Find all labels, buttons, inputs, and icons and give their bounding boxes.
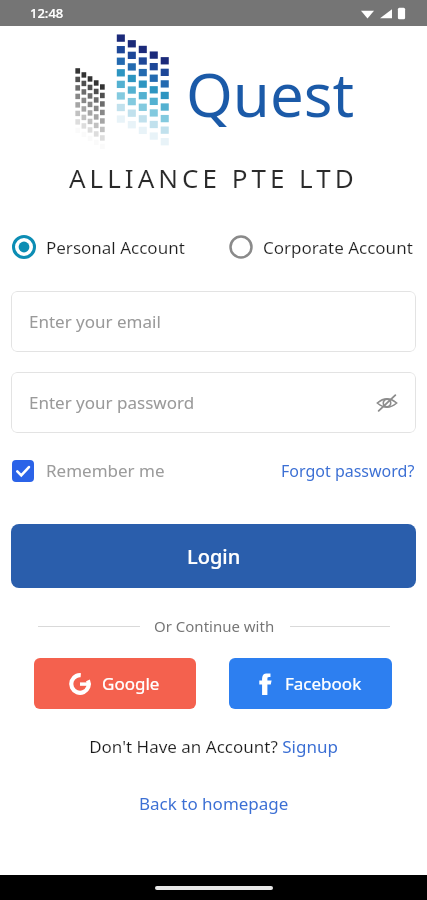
button[interactable]: Google [34,658,196,709]
button[interactable]: Corporate Account [229,231,413,263]
staticText: Forgot password? [281,460,415,482]
staticText: Back to homepage [139,792,289,815]
staticText: Don't Have an Account? Signup [89,735,338,758]
button[interactable]: Enter your password [11,372,416,433]
staticText: Quest [186,53,355,135]
button[interactable]: Forgot password? [281,460,415,482]
button[interactable]: Back to homepage [139,792,289,815]
staticText: Enter your email [29,310,161,333]
button[interactable]: Don't Have an Account? Signup [89,735,338,758]
button[interactable]: Remember me [12,459,165,482]
staticText: Corporate Account [263,236,413,259]
staticText: 12:48 [30,4,64,22]
staticText: Or Continue with [154,616,275,636]
button[interactable]: Enter your email [11,291,416,352]
staticText: Remember me [46,459,165,482]
button[interactable]: Show password [372,388,402,418]
staticText: ALLIANCE PTE LTD [69,160,358,195]
button[interactable]: Personal Account [12,231,185,263]
staticText: Login [187,543,241,570]
staticText: Personal Account [46,236,185,259]
button[interactable]: Login [11,524,416,588]
staticText: Facebook [285,672,362,695]
staticText: Enter your password [29,391,195,414]
staticText: Google [102,672,160,695]
button[interactable]: Facebook [229,658,392,709]
